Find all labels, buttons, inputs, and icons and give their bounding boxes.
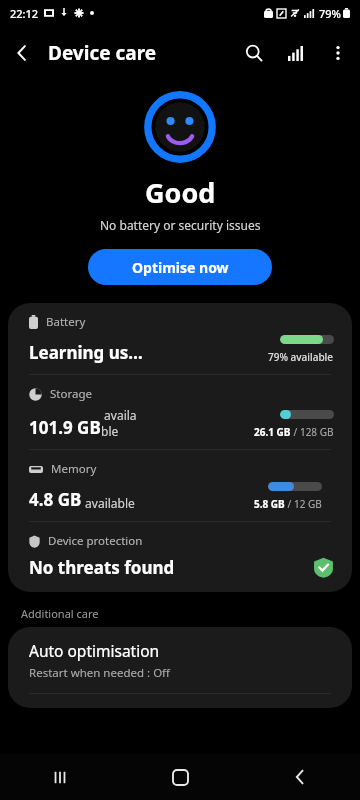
- staticText: 4.8 GB: [29, 488, 82, 511]
- staticText: Storage: [50, 386, 92, 402]
- button[interactable]: Memory: [8, 450, 352, 522]
- button[interactable]: Device protection: [8, 522, 352, 592]
- staticText: Memory: [51, 461, 97, 477]
- staticText: available: [82, 495, 135, 511]
- button[interactable]: Back: [0, 31, 44, 75]
- staticText: 26.1 GB: [254, 425, 291, 439]
- button[interactable]: Back: [272, 754, 328, 800]
- button[interactable]: Usage statistics: [276, 33, 316, 73]
- staticText: Additional care: [21, 606, 99, 621]
- staticText: Good: [145, 174, 216, 211]
- staticText: available: [101, 407, 141, 439]
- staticText: 101.9 GB: [29, 416, 101, 439]
- staticText: / 12 GB: [285, 497, 322, 511]
- staticText: Device protection: [48, 533, 143, 549]
- staticText: / 128 GB: [291, 425, 334, 439]
- button[interactable]: More options: [316, 31, 360, 75]
- button[interactable]: Search: [232, 31, 276, 75]
- staticText: 22:12: [10, 6, 39, 21]
- staticText: Learning usage patterns...: [29, 341, 148, 364]
- staticText: Auto optimisation: [29, 640, 160, 661]
- button[interactable]: Storage: [8, 375, 352, 450]
- staticText: Battery: [46, 314, 86, 330]
- staticText: No battery or security issues: [100, 217, 261, 233]
- staticText: No threats found: [29, 556, 175, 579]
- button[interactable]: Auto optimisation: [8, 627, 352, 693]
- button[interactable]: Recent apps: [32, 754, 88, 800]
- staticText: Device care: [48, 40, 157, 66]
- staticText: 79%: [319, 6, 341, 21]
- staticText: 79% available: [268, 350, 334, 364]
- staticText: Restart when needed : Off: [29, 665, 171, 681]
- button[interactable]: Optimise now: [88, 249, 272, 285]
- button[interactable]: Battery: [8, 303, 352, 375]
- staticText: Optimise now: [132, 258, 229, 277]
- button[interactable]: Home: [152, 754, 208, 800]
- staticText: 5.8 GB: [254, 497, 285, 511]
